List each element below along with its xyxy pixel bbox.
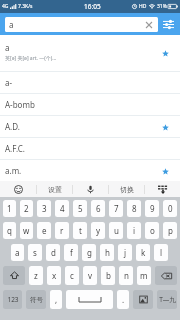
button[interactable]: k	[136, 244, 150, 261]
button[interactable]: Voice input	[73, 181, 108, 197]
button[interactable]: 123	[3, 290, 22, 309]
button[interactable]: m	[137, 266, 151, 285]
button[interactable]: a	[11, 244, 24, 261]
button[interactable]: i	[127, 222, 141, 239]
button[interactable]: x	[47, 266, 61, 285]
staticText: 123	[7, 295, 19, 304]
staticText: z	[34, 270, 38, 281]
staticText: 英[ə] 美[ə] art. 一(个)…	[5, 55, 57, 62]
staticText: HD	[139, 3, 147, 10]
button[interactable]: Bookmark word	[158, 120, 172, 134]
button[interactable]: 2	[20, 200, 33, 217]
button[interactable]: 5	[73, 200, 87, 217]
button[interactable]: b	[101, 266, 115, 285]
button[interactable]: Bookmark word	[158, 164, 172, 178]
staticText: a	[5, 42, 10, 53]
staticText: 0	[168, 203, 173, 214]
button[interactable]: A-bomb	[0, 94, 180, 115]
button[interactable]: 4	[55, 200, 69, 217]
staticText: a.m.	[5, 165, 22, 176]
button[interactable]: t	[73, 222, 87, 239]
staticText: A.D.	[5, 121, 20, 132]
staticText: v	[88, 270, 93, 281]
staticText: e	[42, 225, 47, 236]
button[interactable]: 8	[127, 200, 141, 217]
button[interactable]: Backspace	[155, 266, 177, 285]
button[interactable]: 3	[37, 200, 51, 217]
button[interactable]: y	[91, 222, 105, 239]
button[interactable]: j	[118, 244, 132, 261]
button[interactable]: l	[154, 244, 168, 261]
staticText: 4	[60, 203, 65, 214]
button[interactable]: A.F.C.	[0, 138, 180, 159]
staticText: x	[52, 270, 57, 281]
button[interactable]: Emoji	[0, 181, 36, 197]
staticText: w	[23, 225, 30, 236]
button[interactable]: Shift	[3, 266, 25, 285]
button[interactable]: Clear text	[144, 20, 154, 30]
button[interactable]: a-	[0, 72, 180, 93]
button[interactable]: a	[5, 17, 158, 32]
button[interactable]: Space	[66, 290, 113, 309]
button[interactable]: n	[119, 266, 133, 285]
button[interactable]: 6	[91, 200, 105, 217]
staticText: d	[51, 247, 56, 258]
staticText: 8	[132, 203, 137, 214]
button[interactable]: Hide keyboard	[145, 181, 180, 197]
button[interactable]: g	[82, 244, 96, 261]
button[interactable]: 9	[145, 200, 159, 217]
button[interactable]: a	[0, 35, 180, 71]
staticText: ,	[55, 294, 58, 305]
staticText: j	[124, 247, 127, 258]
staticText: b	[106, 270, 111, 281]
staticText: o	[150, 225, 155, 236]
button[interactable]: A.D.	[0, 116, 180, 137]
staticText: 5	[78, 203, 83, 214]
button[interactable]: 符号	[26, 290, 46, 309]
staticText: 7	[114, 203, 119, 214]
staticText: p	[168, 225, 173, 236]
staticText: 31%	[157, 3, 167, 10]
staticText: 切换	[120, 185, 134, 194]
button[interactable]: w	[20, 222, 33, 239]
button[interactable]: 7	[109, 200, 123, 217]
button[interactable]: 切换	[109, 181, 144, 197]
button[interactable]: Emoji keyboard	[133, 290, 153, 309]
staticText: q	[7, 225, 12, 236]
staticText: h	[105, 247, 110, 258]
button[interactable]: T—九	[157, 290, 177, 309]
button[interactable]: r	[55, 222, 69, 239]
button[interactable]: u	[109, 222, 123, 239]
staticText: .	[122, 294, 125, 305]
staticText: 2	[24, 203, 29, 214]
button[interactable]: q	[3, 222, 16, 239]
button[interactable]: v	[83, 266, 97, 285]
button[interactable]: 1	[3, 200, 16, 217]
button[interactable]: d	[46, 244, 60, 261]
button[interactable]: e	[37, 222, 51, 239]
staticText: 设置	[48, 185, 62, 194]
staticText: 9	[150, 203, 155, 214]
staticText: 7.3K/s	[18, 3, 33, 10]
staticText: 4G	[2, 3, 9, 10]
button[interactable]: Search settings	[157, 13, 180, 35]
button[interactable]: p	[163, 222, 177, 239]
button[interactable]: c	[65, 266, 79, 285]
button[interactable]: z	[29, 266, 43, 285]
button[interactable]: 0	[163, 200, 177, 217]
button[interactable]: 设置	[37, 181, 72, 197]
button[interactable]: s	[28, 244, 42, 261]
staticText: l	[160, 247, 163, 258]
staticText: A.F.C.	[5, 143, 25, 154]
button[interactable]: .	[117, 290, 129, 309]
button[interactable]: a.m.	[0, 160, 180, 181]
staticText: 1	[7, 203, 12, 214]
button[interactable]: f	[64, 244, 78, 261]
button[interactable]: h	[100, 244, 114, 261]
staticText: a	[9, 19, 14, 30]
button[interactable]: ,	[50, 290, 62, 309]
staticText: u	[114, 225, 119, 236]
button[interactable]: Bookmark word	[158, 46, 172, 60]
staticText: t	[79, 225, 82, 236]
button[interactable]: o	[145, 222, 159, 239]
